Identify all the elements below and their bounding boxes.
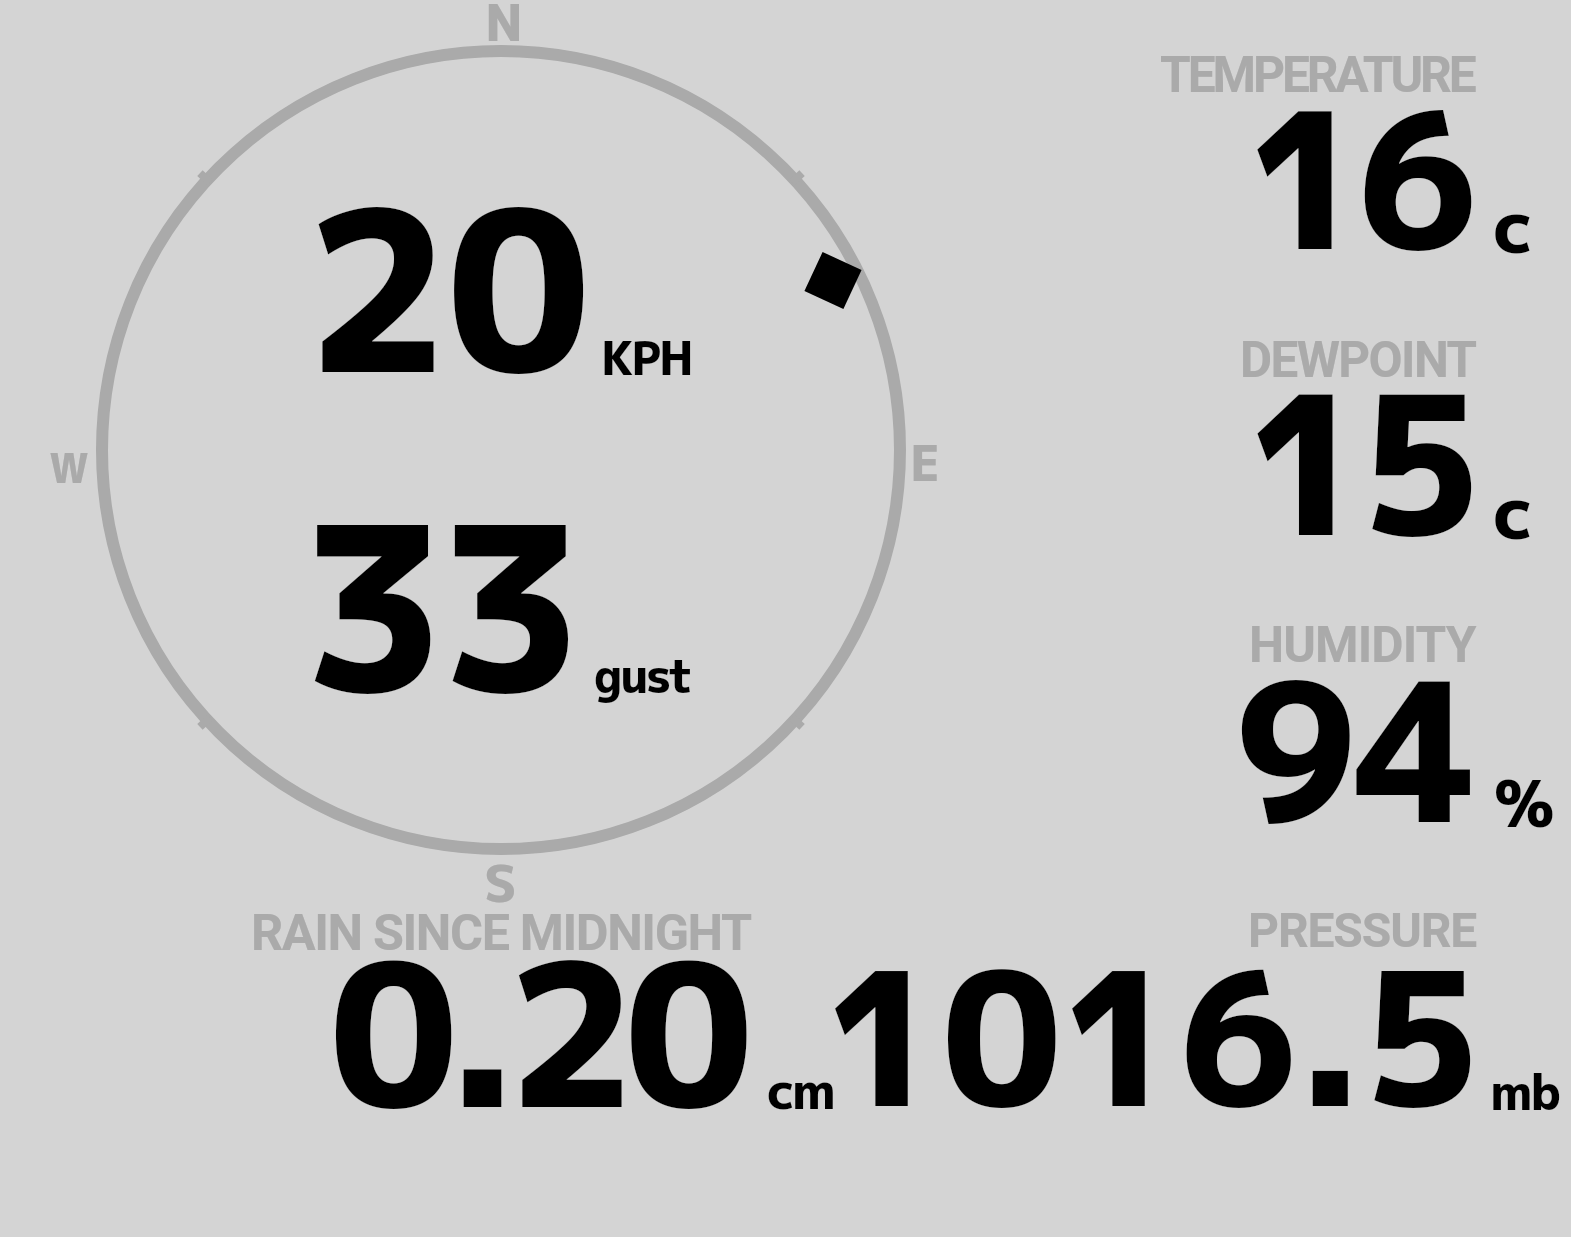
staticText: gust [594,643,691,707]
button[interactable]: Dewpoint 15 C [1140,325,1560,555]
staticText: RAIN SINCE MIDNIGHT [251,903,751,962]
staticText: 94 [1234,616,1475,883]
staticText: % [1494,758,1555,848]
staticText: 15 [1245,329,1474,596]
staticText: TEMPERATURE [1160,46,1474,104]
button[interactable]: Pressure 1016.5 mb [870,896,1560,1126]
staticText: 20 [305,133,588,443]
button[interactable]: Humidity 94 percent [1140,610,1560,840]
staticText: PRESSURE [1248,902,1477,958]
staticText: mb [1490,1057,1559,1126]
staticText: 0.20 [329,893,742,1170]
staticText: DEWPOINT [1240,331,1476,389]
staticText: c [1493,460,1534,563]
button[interactable]: Wind 20 KPH gusting 33, direction compas… [96,44,906,856]
button[interactable]: Rain since midnight 0.20 cm [240,896,860,1126]
button[interactable]: Temperature 16 C [1140,40,1560,270]
staticText: S [484,847,517,919]
staticText: 33 [300,447,576,765]
staticText: c [1493,174,1534,277]
staticText: N [485,0,523,57]
staticText: E [910,428,940,496]
staticText: 16 [1245,46,1468,310]
staticText: cm [767,1054,833,1125]
staticText: 1016.5 [823,907,1481,1165]
staticText: KPH [601,325,692,390]
staticText: W [49,439,90,496]
staticText: HUMIDITY [1249,616,1476,674]
